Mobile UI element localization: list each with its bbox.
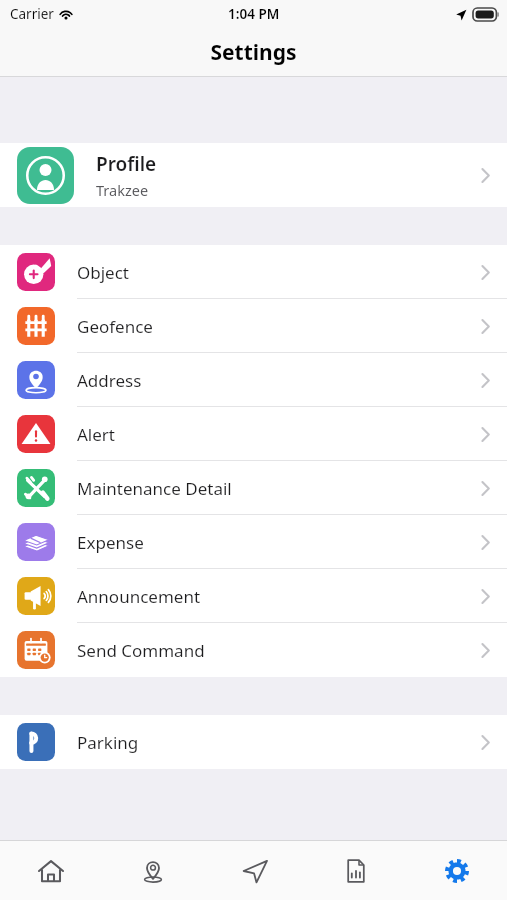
button[interactable]: Maintenance Detail [0,461,507,515]
staticText: 1:04 PM [228,5,280,23]
button[interactable]: Places [102,841,204,900]
button[interactable]: Home [0,841,102,900]
button[interactable]: Parking [0,715,507,769]
staticText: Address [77,369,142,392]
staticText: Expense [77,531,144,554]
staticText: Parking [77,731,139,754]
staticText: Maintenance Detail [77,477,232,500]
button[interactable]: Geofence [0,299,507,353]
staticText: Trakzee [96,180,149,200]
button[interactable]: Reports [305,841,406,900]
staticText: Send Command [77,639,205,662]
button[interactable]: Object [0,245,507,299]
staticText: Profile [96,151,157,177]
staticText: Object [77,261,130,284]
staticText: Carrier [10,5,54,23]
button[interactable]: Settings [406,841,507,900]
button[interactable]: Send Command [0,623,507,677]
button[interactable]: Profile [0,143,507,207]
staticText: Alert [77,423,115,446]
button[interactable]: Expense [0,515,507,569]
button[interactable]: Alert [0,407,507,461]
button[interactable]: Announcement [0,569,507,623]
button[interactable]: Address [0,353,507,407]
button[interactable]: Track [204,841,305,900]
staticText: Settings [210,38,297,67]
staticText: Geofence [77,315,153,338]
staticText: Announcement [77,585,201,608]
